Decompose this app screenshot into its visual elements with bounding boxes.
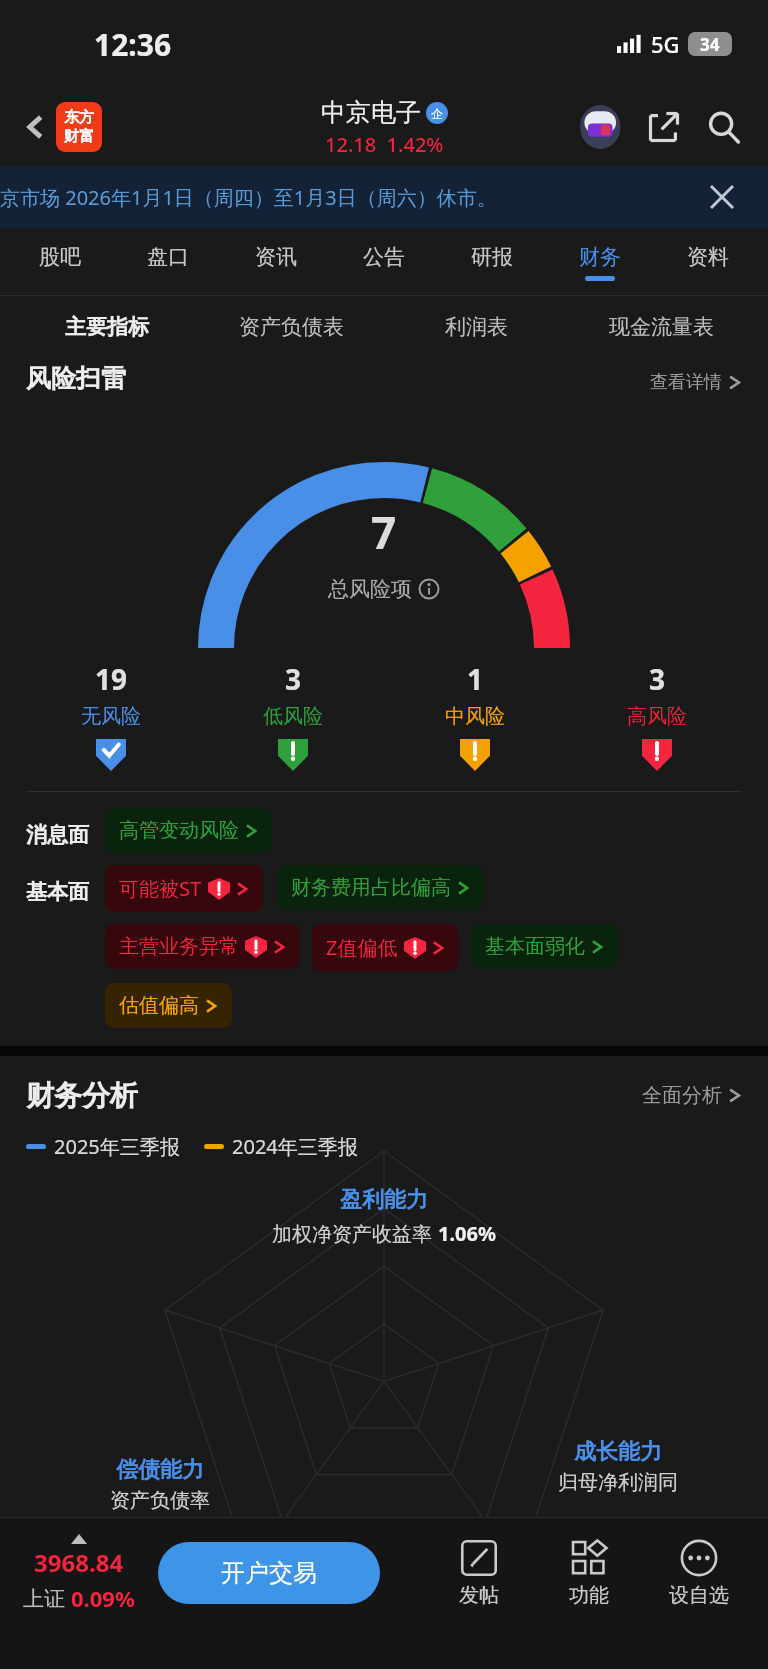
staticText: 中京电子	[321, 97, 421, 128]
button[interactable]: 3	[566, 660, 748, 771]
button[interactable]: 盘口	[114, 228, 222, 296]
staticText: 估值偏高	[119, 993, 199, 1018]
staticText: 1.06%	[438, 1220, 496, 1247]
button[interactable]: 财务费用占比偏高	[277, 865, 484, 910]
staticText: 主要指标	[65, 314, 149, 340]
staticText: 无风险	[81, 704, 141, 729]
button[interactable]: 设自选	[644, 1539, 754, 1608]
button[interactable]: Back	[10, 101, 62, 153]
staticText: 京市场 2026年1月1日（周四）至1月3日（周六）休市。	[0, 184, 497, 211]
staticText: 企	[431, 106, 443, 121]
button[interactable]: 3968.84	[14, 1534, 144, 1613]
staticText: 高管变动风险	[119, 818, 239, 843]
staticText: 财务费用占比偏高	[291, 875, 451, 900]
staticText: 利润表	[445, 314, 508, 340]
button[interactable]: 研报	[438, 228, 546, 296]
staticText: 全面分析	[642, 1083, 722, 1108]
staticText: 资产负债表	[239, 314, 344, 340]
staticText: 资讯	[255, 244, 297, 270]
staticText: 研报	[471, 244, 513, 270]
button[interactable]: 19	[20, 660, 202, 771]
staticText: 财务分析	[26, 1078, 138, 1113]
button[interactable]: 主营业务异常	[105, 924, 300, 969]
staticText: 偿债能力	[116, 1456, 204, 1484]
staticText: 公告	[363, 244, 405, 270]
button[interactable]: 东方财富	[56, 102, 102, 152]
staticText: 基本面弱化	[485, 934, 585, 959]
staticText: 7	[371, 502, 397, 562]
staticText: 19	[95, 660, 128, 698]
staticText: 加权净资产收益率	[272, 1220, 438, 1247]
button[interactable]: 财务	[546, 228, 654, 296]
staticText: 风险扫雷	[26, 363, 126, 394]
staticText: 高风险	[627, 704, 687, 729]
staticText: 东方	[64, 108, 94, 127]
staticText: 盘口	[147, 244, 189, 270]
button[interactable]: 资产负债表	[199, 296, 384, 358]
staticText: Z值偏低	[326, 934, 398, 961]
button[interactable]: 主要指标	[14, 296, 199, 358]
staticText: 财务	[579, 244, 621, 270]
button[interactable]: 1	[384, 660, 566, 771]
button[interactable]: 利润表	[384, 296, 569, 358]
staticText: 归母净利润同	[558, 1470, 678, 1495]
button[interactable]: 3	[202, 660, 384, 771]
button[interactable]: Share	[638, 101, 690, 153]
staticText: 1	[467, 660, 484, 698]
button[interactable]: 开户交易	[158, 1542, 380, 1604]
staticText: 低风险	[263, 704, 323, 729]
button[interactable]: 可能被ST	[105, 865, 263, 912]
button[interactable]: 发帖	[424, 1539, 534, 1608]
button[interactable]: Search	[698, 101, 750, 153]
button[interactable]: Z值偏低	[312, 924, 459, 971]
button[interactable]: 全面分析	[642, 1083, 742, 1108]
staticText: 财富	[64, 127, 94, 146]
staticText: 股吧	[39, 244, 81, 270]
staticText: 主营业务异常	[119, 934, 239, 959]
staticText: 消息面	[26, 822, 89, 848]
staticText: 基本面	[26, 879, 89, 905]
button[interactable]: 估值偏高	[105, 983, 232, 1028]
button[interactable]: 基本面弱化	[471, 924, 618, 969]
staticText: 2025年三季报	[54, 1133, 180, 1160]
staticText: 3	[285, 660, 302, 698]
staticText: 查看详情	[650, 371, 722, 394]
staticText: 总风险项	[328, 576, 412, 602]
staticText: 盈利能力	[340, 1186, 428, 1214]
staticText: 资料	[687, 244, 729, 270]
button[interactable]: 公告	[330, 228, 438, 296]
staticText: 开户交易	[221, 1558, 317, 1588]
button[interactable]: 股吧	[6, 228, 114, 296]
staticText: 5G	[651, 29, 680, 59]
button[interactable]: 高管变动风险	[105, 808, 272, 853]
staticText: 资产负债率	[110, 1488, 210, 1513]
button[interactable]: AI助手	[576, 101, 628, 153]
staticText: 12:36	[94, 24, 172, 65]
staticText: 可能被ST	[119, 875, 202, 902]
staticText: 成长能力	[574, 1438, 662, 1466]
staticText: 34	[700, 33, 720, 56]
staticText: 0.09%	[71, 1583, 135, 1613]
button[interactable]: 现金流量表	[569, 296, 754, 358]
staticText: 设自选	[669, 1583, 729, 1608]
staticText: 12.18 1.42%	[325, 131, 444, 158]
button[interactable]: 资讯	[222, 228, 330, 296]
button[interactable]: 资料	[654, 228, 762, 296]
staticText: 中风险	[445, 704, 505, 729]
staticText: 3968.84	[34, 1546, 124, 1579]
staticText: 发帖	[459, 1583, 499, 1608]
button[interactable]: 功能	[534, 1539, 644, 1608]
staticText: 上证	[23, 1584, 71, 1613]
staticText: 功能	[569, 1583, 609, 1608]
staticText: 3	[649, 660, 666, 698]
staticText: 2024年三季报	[232, 1133, 358, 1160]
staticText: 现金流量表	[609, 314, 714, 340]
button[interactable]: Close	[702, 177, 742, 217]
